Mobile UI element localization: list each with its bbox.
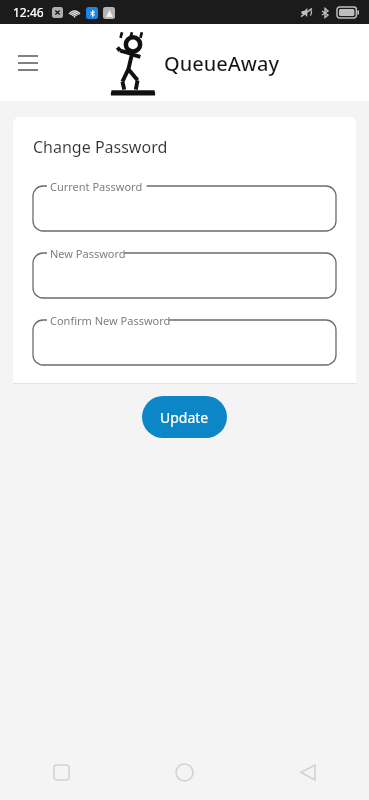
button[interactable]: Confirm New Password bbox=[33, 313, 336, 365]
staticText: Change Password bbox=[33, 136, 168, 158]
button[interactable]: New Password bbox=[33, 246, 336, 298]
staticText: 12:46 bbox=[13, 4, 44, 20]
staticText: Current Password bbox=[50, 179, 143, 194]
button[interactable]: Update bbox=[142, 396, 227, 438]
staticText: Update bbox=[160, 408, 209, 427]
button[interactable]: Home bbox=[123, 744, 246, 800]
staticText: New Password bbox=[50, 246, 126, 261]
staticText: QueueAway bbox=[164, 50, 279, 77]
button[interactable]: Open navigation menu bbox=[8, 43, 48, 83]
button[interactable]: Recent apps bbox=[0, 744, 123, 800]
button[interactable]: Back bbox=[246, 744, 369, 800]
staticText: Confirm New Password bbox=[50, 313, 171, 328]
button[interactable]: Current Password bbox=[33, 179, 336, 231]
